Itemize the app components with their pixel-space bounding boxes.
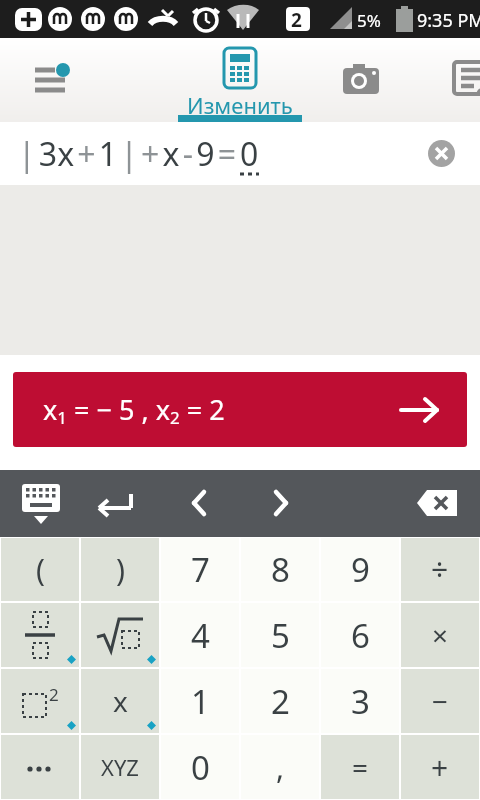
button[interactable] bbox=[20, 53, 80, 108]
staticText: 7 bbox=[191, 547, 210, 592]
button[interactable]: − bbox=[401, 669, 479, 733]
button[interactable] bbox=[20, 482, 64, 528]
staticText: , bbox=[276, 747, 285, 788]
button[interactable] bbox=[1, 735, 79, 799]
staticText: 8 bbox=[271, 547, 290, 592]
staticText: x1 = − 5 , x2 = 2 bbox=[43, 391, 225, 429]
button[interactable] bbox=[1, 603, 79, 667]
button[interactable]: = bbox=[321, 735, 399, 799]
staticText: | 3x + 1 | + x - 9 = bbox=[18, 132, 240, 176]
button[interactable]: XYZ bbox=[81, 735, 159, 799]
button[interactable]: 0 bbox=[161, 735, 239, 799]
staticText: ÷ bbox=[431, 549, 449, 590]
staticText: 0 bbox=[240, 132, 259, 176]
button[interactable] bbox=[452, 60, 480, 100]
button[interactable]: 8 bbox=[241, 538, 319, 601]
button[interactable]: + bbox=[401, 735, 479, 799]
button[interactable]: × bbox=[401, 603, 479, 667]
button[interactable]: ) bbox=[81, 538, 159, 601]
staticText: − bbox=[432, 682, 449, 720]
staticText: × bbox=[432, 616, 449, 654]
button[interactable]: x bbox=[81, 669, 159, 733]
button[interactable] bbox=[428, 140, 455, 167]
staticText: 6 bbox=[351, 613, 370, 658]
staticText: Изменить bbox=[187, 90, 293, 120]
staticText: ( bbox=[36, 549, 45, 590]
button[interactable]: 9 bbox=[321, 538, 399, 601]
button[interactable]: 1 bbox=[161, 669, 239, 733]
staticText: 0 bbox=[191, 745, 210, 790]
button[interactable] bbox=[415, 488, 461, 518]
button[interactable]: 6 bbox=[321, 603, 399, 667]
button[interactable]: 4 bbox=[161, 603, 239, 667]
staticText: + bbox=[431, 747, 449, 788]
staticText: 2 bbox=[291, 7, 302, 33]
button[interactable] bbox=[265, 488, 295, 518]
staticText: x bbox=[113, 682, 128, 720]
staticText: 5 bbox=[271, 613, 290, 658]
button[interactable] bbox=[340, 60, 384, 100]
button[interactable]: Изменить bbox=[187, 38, 293, 120]
staticText: ) bbox=[116, 549, 125, 590]
staticText: = bbox=[352, 748, 369, 786]
button[interactable]: 3 bbox=[321, 669, 399, 733]
button[interactable]: 7 bbox=[161, 538, 239, 601]
staticText: 1 bbox=[191, 679, 210, 724]
staticText: 9:35 PM bbox=[417, 8, 480, 33]
button[interactable]: 5 bbox=[241, 603, 319, 667]
button[interactable] bbox=[81, 603, 159, 667]
button[interactable]: ÷ bbox=[401, 538, 479, 601]
button[interactable]: ( bbox=[1, 538, 79, 601]
button[interactable]: , bbox=[241, 735, 319, 799]
staticText: 9 bbox=[351, 547, 370, 592]
button[interactable]: 2 bbox=[241, 669, 319, 733]
staticText: 4 bbox=[191, 613, 210, 658]
staticText: 3 bbox=[351, 679, 370, 724]
button[interactable] bbox=[95, 488, 137, 518]
staticText: 2 bbox=[271, 679, 290, 724]
button[interactable]: x1 = − 5 , x2 = 2 bbox=[13, 372, 467, 447]
staticText: XYZ bbox=[101, 752, 139, 782]
staticText: 5% bbox=[357, 9, 381, 32]
button[interactable]: 2 bbox=[1, 669, 79, 733]
button[interactable] bbox=[185, 488, 215, 518]
staticText: 2 bbox=[49, 683, 59, 706]
